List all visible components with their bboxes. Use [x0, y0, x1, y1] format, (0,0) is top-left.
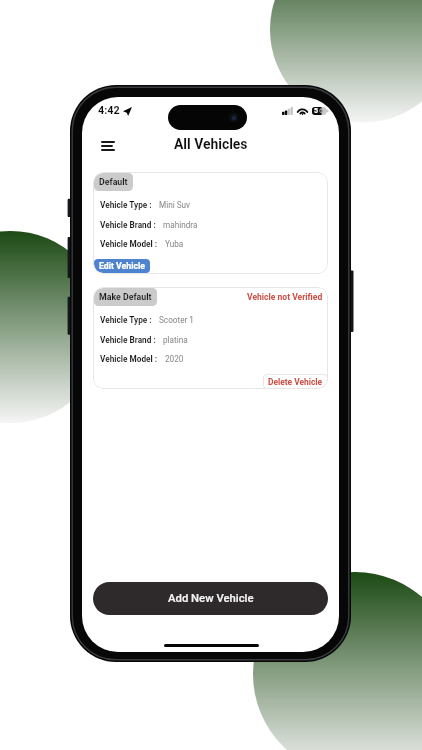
staticText: Vehicle Model : — [100, 354, 158, 364]
staticText: Mini Suv — [159, 200, 191, 210]
staticText: Scooter 1 — [159, 315, 194, 325]
staticText: Vehicle Brand : — [100, 220, 156, 230]
staticText: 2020 — [165, 354, 184, 364]
staticText: Vehicle Type : — [100, 200, 152, 210]
staticText: 5 — [314, 107, 319, 115]
staticText: Vehicle Model : — [100, 239, 158, 249]
staticText: Vehicle not Verified — [247, 292, 323, 302]
staticText: Make Default — [99, 292, 152, 302]
button[interactable]: Delete Vehicle — [263, 374, 328, 389]
staticText: platina — [163, 335, 188, 345]
staticText: Delete Vehicle — [268, 377, 323, 387]
button[interactable]: Make Default — [94, 288, 157, 306]
staticText: Add New Vehicle — [168, 592, 254, 605]
button[interactable]: Default — [94, 173, 133, 191]
button[interactable]: Add New Vehicle — [93, 582, 328, 615]
staticText: Vehicle Brand : — [100, 335, 156, 345]
staticText: 6 — [319, 107, 324, 115]
staticText: 4:42 — [98, 104, 120, 117]
button[interactable]: Open navigation menu — [95, 135, 121, 157]
staticText: mahindra — [163, 220, 198, 230]
button[interactable]: Edit Vehicle — [94, 259, 150, 273]
staticText: Edit Vehicle — [99, 261, 145, 271]
staticText: Yuba — [165, 239, 184, 249]
staticText: Default — [99, 177, 128, 187]
staticText: Vehicle Type : — [100, 315, 152, 325]
staticText: All Vehicles — [174, 136, 248, 152]
